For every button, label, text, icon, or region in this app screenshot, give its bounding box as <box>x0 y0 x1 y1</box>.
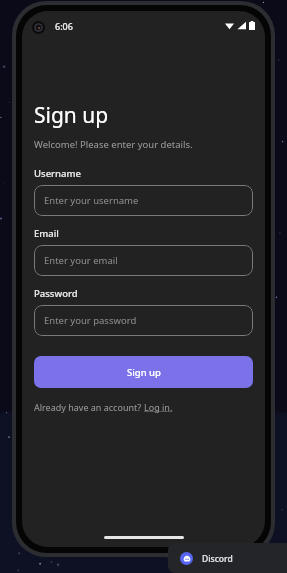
button[interactable]: Enter your password <box>34 305 253 336</box>
staticText: Sign up <box>127 366 161 379</box>
staticText: Welcome! Please enter your details. <box>34 138 193 151</box>
staticText: Enter your password <box>44 314 137 327</box>
button[interactable]: Enter your username <box>34 185 253 216</box>
button[interactable]: Sign up <box>34 356 253 388</box>
staticText: Password <box>34 287 78 300</box>
other: Discord <box>180 552 193 565</box>
staticText: Enter your username <box>44 194 139 207</box>
staticText: Enter your email <box>44 254 118 267</box>
staticText: 6:06 <box>55 20 73 32</box>
button[interactable]: Enter your email <box>34 245 253 276</box>
staticText: Email <box>34 227 59 240</box>
staticText: Log in. <box>144 401 173 413</box>
staticText: Discord <box>202 553 233 565</box>
staticText: Already have an account? <box>34 401 144 413</box>
staticText: Username <box>34 167 81 180</box>
button[interactable]: Already have an account? <box>34 401 173 413</box>
button[interactable]: Discord <box>168 543 287 573</box>
staticText: Sign up <box>34 101 109 130</box>
